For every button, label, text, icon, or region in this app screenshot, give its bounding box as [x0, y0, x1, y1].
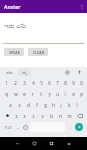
staticText: v [41, 113, 44, 119]
button[interactable]: y [45, 88, 53, 99]
staticText: m [67, 113, 72, 119]
button[interactable]: More options [76, 1, 87, 12]
button[interactable]: SPEAK [4, 48, 24, 56]
button[interactable]: a [6, 99, 15, 110]
staticText: 3 [23, 80, 26, 86]
button[interactable]: 5 [37, 77, 45, 88]
button[interactable]: r [29, 88, 37, 99]
button[interactable]: v [38, 110, 47, 121]
staticText: 2 [14, 80, 17, 86]
staticText: j [60, 102, 62, 108]
button[interactable]: Back [9, 137, 26, 150]
staticText: CLEAR [33, 50, 44, 55]
button[interactable]: , [14, 122, 21, 132]
staticText: abc [6, 70, 13, 75]
button[interactable]: 7 [53, 77, 61, 88]
button[interactable]: o [69, 88, 77, 99]
staticText: . [69, 124, 71, 130]
button[interactable]: Keyboard switcher [60, 137, 77, 150]
button[interactable]: 2 [11, 77, 20, 88]
staticText: e [23, 91, 26, 97]
staticText: ?123 [4, 125, 12, 130]
staticText: x [23, 113, 26, 119]
button[interactable]: t [37, 88, 45, 99]
staticText: r [32, 91, 34, 97]
button[interactable]: b [47, 110, 56, 121]
button[interactable]: f [33, 99, 41, 110]
button[interactable]: 8 [61, 77, 69, 88]
button[interactable]: Shift [2, 110, 12, 121]
staticText: d [27, 102, 30, 108]
staticText: q [5, 91, 8, 97]
button[interactable]: Keyboard settings [63, 68, 72, 77]
button[interactable]: c [29, 110, 38, 121]
staticText: g [44, 102, 47, 108]
staticText: 7 [56, 80, 59, 86]
button[interactable]: n [56, 110, 65, 121]
staticText: u [56, 91, 59, 97]
staticText: h [52, 102, 55, 108]
button[interactable]: . [66, 122, 73, 132]
staticText: ಇದು ಏನು [4, 21, 27, 30]
staticText: 9 [72, 80, 75, 86]
staticText: 1 [5, 80, 8, 86]
button[interactable]: Backspace [74, 110, 85, 121]
button[interactable]: s [15, 99, 24, 110]
button[interactable]: CLEAR [28, 48, 48, 56]
staticText: p [80, 91, 83, 97]
button[interactable]: 1 [2, 77, 11, 88]
staticText: z [15, 113, 18, 119]
button[interactable]: l [73, 99, 81, 110]
button[interactable]: ಇದು ಏನು [4, 21, 87, 30]
staticText: c [32, 113, 35, 119]
button[interactable]: q [2, 88, 11, 99]
button[interactable]: Emoji [21, 122, 29, 132]
button[interactable]: p [77, 88, 85, 99]
staticText: Anster [4, 3, 21, 10]
button[interactable]: d [24, 99, 33, 110]
button[interactable]: i [61, 88, 69, 99]
staticText: i [64, 91, 66, 97]
staticText: 5 [40, 80, 43, 86]
staticText: n [59, 113, 62, 119]
staticText: w [14, 91, 18, 97]
staticText: 0 [80, 80, 83, 86]
staticText: o [72, 91, 75, 97]
button[interactable]: 6 [45, 77, 53, 88]
staticText: SPEAK [9, 50, 20, 55]
button[interactable]: u [53, 88, 61, 99]
button[interactable]: e [20, 88, 29, 99]
staticText: 6 [48, 80, 51, 86]
staticText: ಕನ್ನ [22, 71, 27, 75]
staticText: l [76, 102, 78, 108]
staticText: t [40, 91, 42, 97]
button[interactable]: x [20, 110, 29, 121]
button[interactable]: 4 [29, 77, 37, 88]
staticText: 4 [32, 80, 35, 86]
button[interactable]: 3 [20, 77, 29, 88]
button[interactable]: ?123 [2, 122, 14, 132]
staticText: y [48, 91, 51, 97]
button[interactable]: Voice input [75, 68, 84, 77]
staticText: f [36, 102, 38, 108]
button[interactable]: ಕನ್ನ [18, 69, 31, 76]
button[interactable]: 0 [77, 77, 85, 88]
button[interactable]: w [11, 88, 20, 99]
staticText: 8 [64, 80, 67, 86]
button[interactable]: h [49, 99, 57, 110]
button[interactable]: Recent apps [43, 137, 60, 150]
staticText: s [18, 102, 21, 108]
button[interactable]: 9 [69, 77, 77, 88]
staticText: b [50, 113, 53, 119]
staticText: k [68, 102, 71, 108]
button[interactable]: Home [26, 137, 43, 150]
staticText: , [17, 124, 19, 130]
button[interactable]: m [65, 110, 74, 121]
button[interactable]: z [12, 110, 20, 121]
button[interactable]: g [41, 99, 49, 110]
button[interactable]: abc [3, 69, 15, 76]
button[interactable]: k [65, 99, 73, 110]
button[interactable]: j [57, 99, 65, 110]
button[interactable]: Enter [75, 123, 83, 131]
